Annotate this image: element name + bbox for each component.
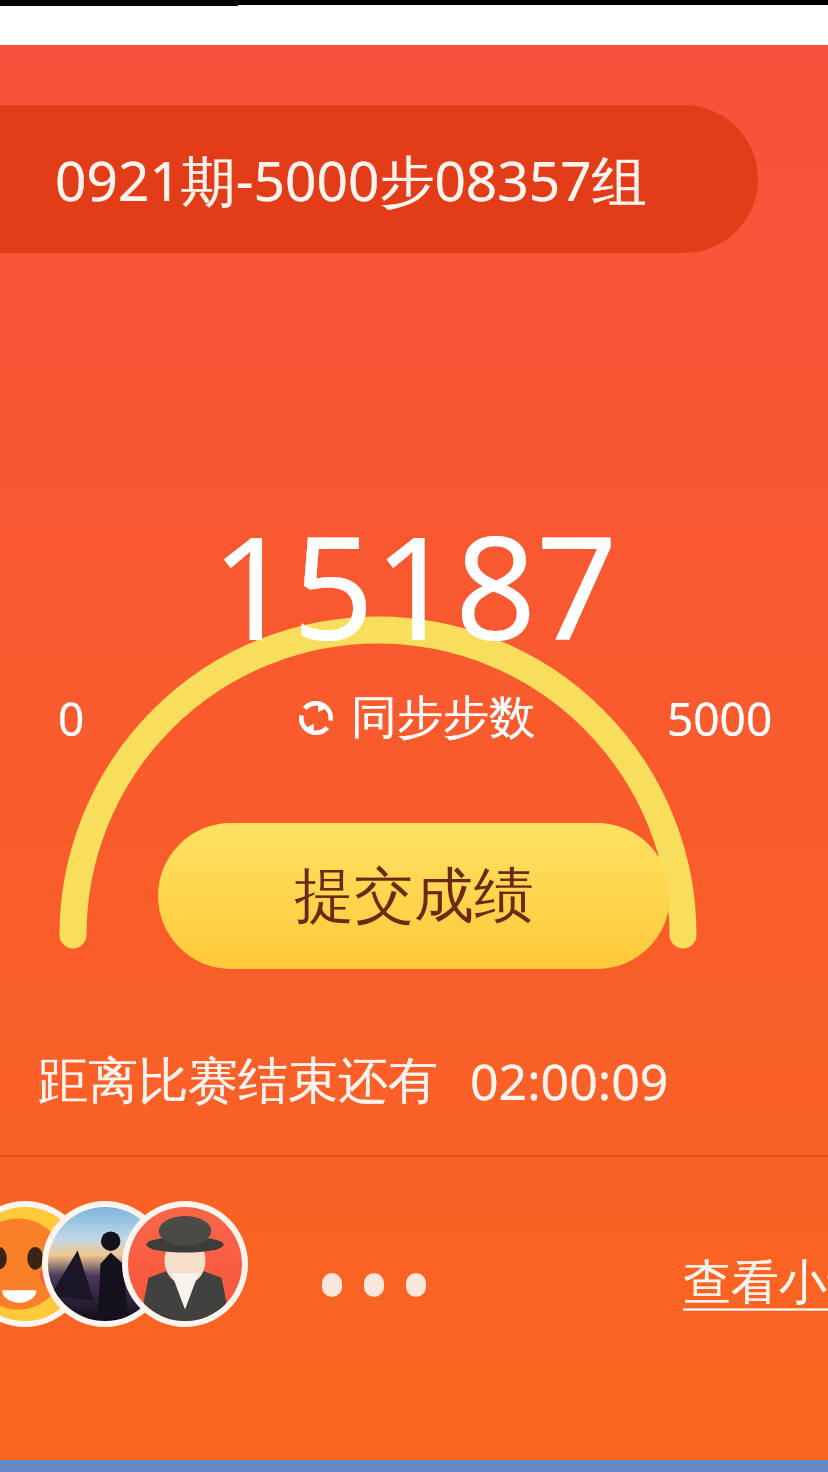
staticText: 提交成绩	[294, 858, 534, 934]
staticText: 02:00:09	[470, 1047, 669, 1115]
button[interactable]: 成员头像	[122, 1201, 248, 1327]
button[interactable]: 查看小组	[683, 1253, 828, 1313]
button[interactable]: 成员头像	[0, 1201, 88, 1327]
button[interactable]: 成员头像	[42, 1201, 168, 1327]
button[interactable]: 更多	[318, 1269, 430, 1301]
staticText: 距离比赛结束还有	[38, 1050, 438, 1113]
staticText: 15187	[211, 488, 618, 681]
staticText: 0	[58, 687, 85, 750]
button[interactable]: 提交成绩	[158, 823, 670, 969]
button[interactable]: 同步步数	[287, 685, 541, 751]
staticText: 5000	[667, 687, 773, 750]
staticText: 0921期-5000步08357组	[55, 142, 647, 217]
staticText: 同步步数	[351, 689, 535, 747]
other: 同步步数	[293, 695, 339, 741]
button[interactable]: 0921期-5000步08357组	[0, 105, 758, 253]
